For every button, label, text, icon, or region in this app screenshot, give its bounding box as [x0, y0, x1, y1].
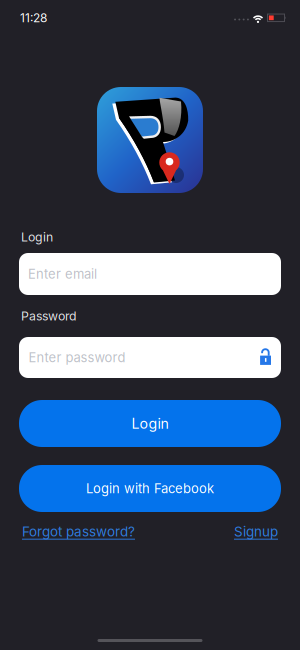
staticText: Forgot password? [22, 523, 135, 540]
button[interactable]: Forgot password? [22, 523, 135, 540]
button[interactable]: Enter email [19, 253, 281, 295]
staticText: 11:28 [20, 11, 47, 25]
button[interactable]: Signup [234, 523, 278, 540]
staticText: Login with Facebook [86, 481, 214, 496]
button[interactable]: Enter password [19, 337, 281, 378]
staticText: Login [21, 230, 53, 244]
staticText: Enter email [28, 266, 97, 282]
staticText: Login [131, 415, 168, 432]
staticText: Enter password [28, 350, 125, 365]
button[interactable]: Login with Facebook [19, 465, 281, 512]
staticText: Signup [234, 523, 278, 540]
button[interactable]: Login [19, 400, 281, 447]
staticText: Password [21, 309, 77, 323]
